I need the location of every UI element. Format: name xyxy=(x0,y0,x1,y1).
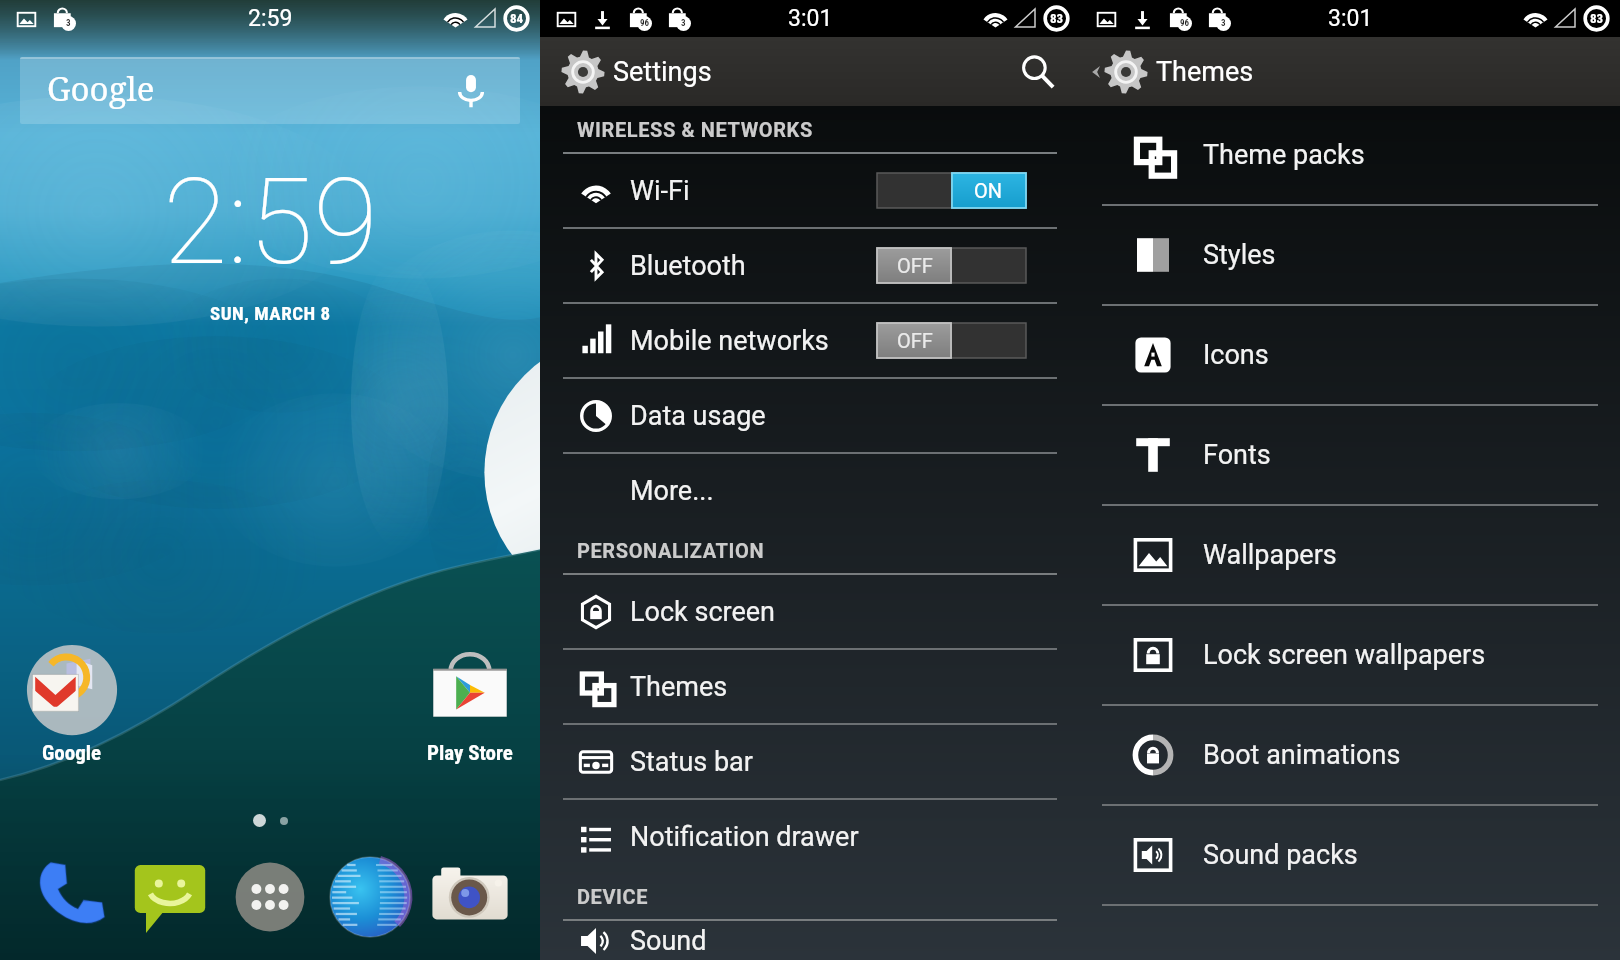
staticText: Themes xyxy=(630,671,728,703)
staticText: Styles xyxy=(1203,239,1276,271)
staticText: Fonts xyxy=(1203,439,1271,471)
staticText: 96 xyxy=(1180,18,1190,29)
staticText: Sound xyxy=(630,925,707,957)
staticText: OFF xyxy=(897,254,933,277)
staticText: Lock screen xyxy=(630,596,775,628)
button[interactable]: Styles xyxy=(1080,206,1620,304)
staticText: 3 xyxy=(1221,18,1226,29)
button[interactable]: More... xyxy=(540,454,1080,527)
staticText: Data usage xyxy=(630,400,766,432)
button[interactable]: ON xyxy=(877,173,1026,208)
button[interactable]: Wallpapers xyxy=(1080,506,1620,604)
staticText: Lock screen wallpapers xyxy=(1203,639,1486,671)
button[interactable]: Camera xyxy=(426,853,514,941)
button[interactable]: Search xyxy=(1006,40,1070,104)
staticText: 2:59 xyxy=(248,5,293,32)
button[interactable]: OFF xyxy=(877,323,1026,358)
staticText: Theme packs xyxy=(1203,139,1365,171)
staticText: Play Store xyxy=(427,741,513,766)
button[interactable]: Fonts xyxy=(1080,406,1620,504)
button[interactable]: Back xyxy=(1086,50,1254,94)
staticText: WIRELESS & NETWORKS xyxy=(577,118,813,141)
button[interactable]: Themes xyxy=(540,650,1080,723)
button[interactable]: Settings xyxy=(561,50,712,94)
staticText: Mobile networks xyxy=(630,325,829,357)
staticText: ON xyxy=(974,179,1003,202)
button[interactable]: Wi-Fi xyxy=(540,154,1080,227)
staticText: Wallpapers xyxy=(1203,539,1337,571)
staticText: Notification drawer xyxy=(630,821,859,853)
button[interactable]: Bluetooth xyxy=(540,229,1080,302)
staticText: DEVICE xyxy=(577,885,649,908)
staticText: Icons xyxy=(1203,339,1269,371)
button[interactable]: Messaging xyxy=(126,853,214,941)
button[interactable]: Boot animations xyxy=(1080,706,1620,804)
button[interactable]: Sound packs xyxy=(1080,806,1620,904)
staticText: 3:01 xyxy=(788,5,833,32)
staticText: Sound packs xyxy=(1203,839,1358,871)
staticText: 84 xyxy=(510,11,524,26)
staticText: 96 xyxy=(640,18,650,29)
staticText: Status bar xyxy=(630,746,753,778)
other: Voice search xyxy=(452,72,490,110)
staticText: 3:01 xyxy=(1328,5,1373,32)
staticText: 83 xyxy=(1050,11,1064,26)
button[interactable]: Play Store xyxy=(424,645,516,766)
staticText: 3 xyxy=(681,18,686,29)
staticText: Wi-Fi xyxy=(630,175,690,207)
staticText: OFF xyxy=(897,329,933,352)
staticText: 3 xyxy=(66,18,71,29)
staticText: Themes xyxy=(1156,56,1254,88)
staticText: Settings xyxy=(613,56,712,88)
staticText: Bluetooth xyxy=(630,250,746,282)
button[interactable]: Phone xyxy=(26,853,114,941)
button[interactable]: Sound xyxy=(540,921,1080,960)
button[interactable]: Theme packs xyxy=(1080,106,1620,204)
button[interactable]: Status bar xyxy=(540,725,1080,798)
button[interactable]: Lock screen wallpapers xyxy=(1080,606,1620,704)
staticText: 2:59 xyxy=(163,154,378,292)
button[interactable]: Notification drawer xyxy=(540,800,1080,873)
button[interactable]: Google xyxy=(26,645,118,766)
staticText: 83 xyxy=(1590,11,1604,26)
button[interactable]: Browser xyxy=(326,853,414,941)
button[interactable]: Lock screen xyxy=(540,575,1080,648)
staticText: Google xyxy=(42,741,102,766)
button[interactable]: Apps xyxy=(226,853,314,941)
staticText: More... xyxy=(630,475,714,507)
other: Back xyxy=(1086,63,1104,81)
button[interactable]: Mobile networks xyxy=(540,304,1080,377)
staticText: Boot animations xyxy=(1203,739,1401,771)
staticText: Google xyxy=(47,66,155,111)
staticText: PERSONALIZATION xyxy=(577,539,765,562)
button[interactable]: OFF xyxy=(877,248,1026,283)
button[interactable]: Data usage xyxy=(540,379,1080,452)
button[interactable]: Google xyxy=(20,57,520,124)
button[interactable]: Icons xyxy=(1080,306,1620,404)
staticText: SUN, MARCH 8 xyxy=(210,302,331,324)
